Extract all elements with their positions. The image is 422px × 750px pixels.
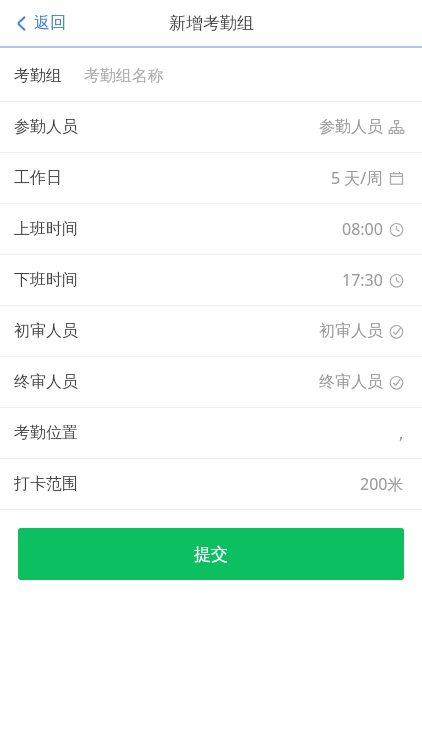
other: Select approver	[389, 375, 404, 390]
button[interactable]: 终审人员	[0, 357, 422, 407]
staticText: 08:00	[342, 218, 383, 240]
button[interactable]: 考勤组	[0, 51, 422, 101]
staticText: 参勤人员	[14, 117, 78, 137]
other: Select work days	[389, 171, 404, 186]
button[interactable]: 初审人员	[0, 306, 422, 356]
staticText: 200米	[360, 473, 404, 495]
button[interactable]: 参勤人员	[0, 102, 422, 152]
staticText: 提交	[194, 544, 228, 565]
staticText: ,	[399, 422, 404, 444]
other: Select approver	[389, 324, 404, 339]
staticText: 上班时间	[14, 219, 78, 239]
other: Select members	[389, 120, 404, 135]
staticText: 下班时间	[14, 270, 78, 290]
button[interactable]: 上班时间	[0, 204, 422, 254]
other: Select time	[389, 222, 404, 237]
button[interactable]: 返回	[0, 0, 80, 46]
staticText: 终审人员	[319, 372, 383, 392]
button[interactable]: 工作日	[0, 153, 422, 203]
staticText: 17:30	[342, 269, 383, 291]
staticText: 工作日	[14, 168, 62, 188]
button[interactable]: 考勤位置	[0, 408, 422, 458]
other: Select time	[389, 273, 404, 288]
staticText: 返回	[34, 13, 66, 33]
staticText: 考勤组名称	[84, 66, 164, 86]
button[interactable]: 提交	[18, 528, 404, 580]
staticText: 打卡范围	[14, 474, 78, 494]
staticText: 初审人员	[14, 321, 78, 341]
staticText: 参勤人员	[319, 117, 383, 137]
staticText: 5 天/周	[331, 167, 383, 189]
button[interactable]: 下班时间	[0, 255, 422, 305]
staticText: 初审人员	[319, 321, 383, 341]
staticText: 考勤组	[14, 66, 62, 86]
staticText: 考勤位置	[14, 423, 78, 443]
staticText: 新增考勤组	[169, 13, 254, 34]
staticText: 终审人员	[14, 372, 78, 392]
button[interactable]: 打卡范围	[0, 459, 422, 509]
